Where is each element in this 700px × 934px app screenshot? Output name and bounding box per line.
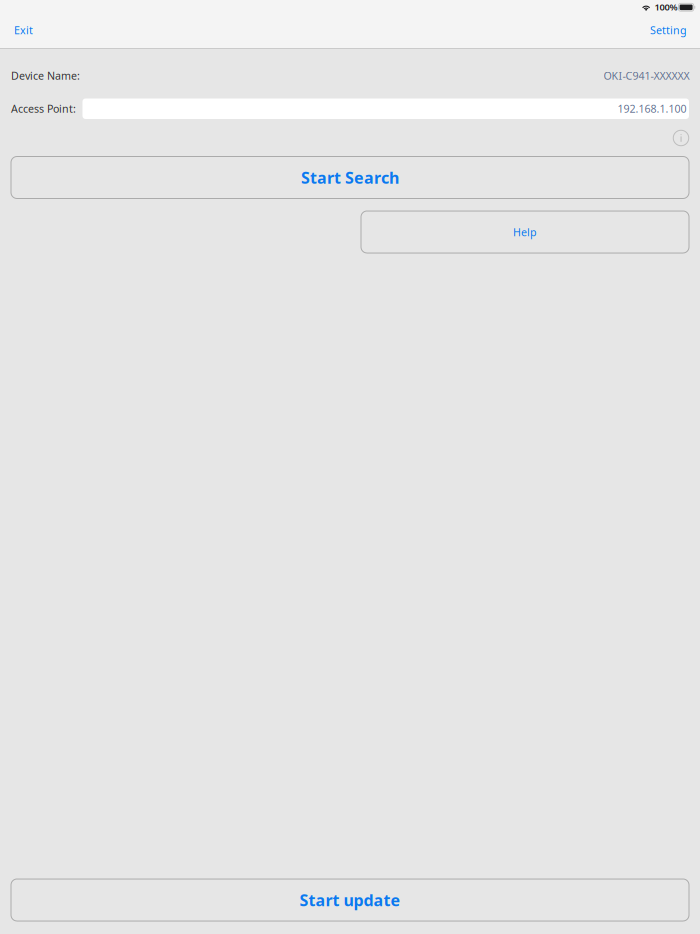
button[interactable]: Exit xyxy=(0,16,64,44)
button[interactable]: Start Search xyxy=(11,156,689,198)
staticText: Access Point: xyxy=(11,101,76,116)
staticText: Start update xyxy=(299,889,400,911)
button[interactable]: Help xyxy=(361,211,689,253)
button[interactable]: Setting xyxy=(612,16,700,44)
button[interactable]: Information xyxy=(669,126,693,150)
staticText: Setting xyxy=(650,23,687,37)
staticText: Help xyxy=(513,225,537,239)
staticText: 100% xyxy=(654,1,677,13)
staticText: 192.168.1.100 xyxy=(617,101,686,116)
staticText: Start Search xyxy=(301,167,399,188)
staticText: OKI-C941-XXXXXX xyxy=(603,68,689,83)
staticText: Exit xyxy=(14,23,33,37)
staticText: Device Name: xyxy=(11,68,80,83)
button[interactable]: Start update xyxy=(11,879,689,921)
